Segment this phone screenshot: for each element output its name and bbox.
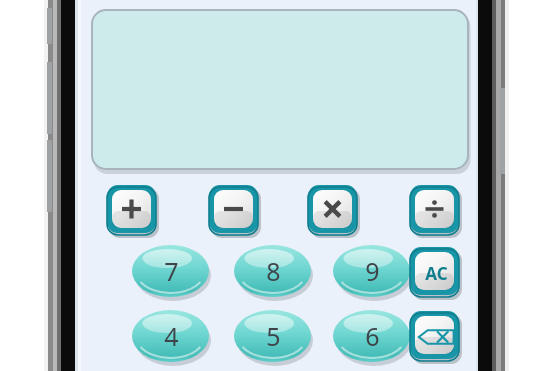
button[interactable]: Minus xyxy=(209,185,261,237)
staticText: AC xyxy=(425,262,448,285)
button[interactable]: Plus xyxy=(107,185,159,237)
staticText: 5 xyxy=(266,319,281,353)
staticText: 9 xyxy=(365,254,380,288)
button[interactable]: 5 xyxy=(234,310,314,366)
staticText: 6 xyxy=(365,319,380,353)
button[interactable]: AC xyxy=(410,247,462,299)
staticText: 4 xyxy=(164,319,179,353)
button[interactable]: 4 xyxy=(132,310,212,366)
button[interactable]: 6 xyxy=(333,310,413,366)
button[interactable]: 7 xyxy=(132,245,212,301)
button[interactable]: Multiply xyxy=(308,185,360,237)
staticText: 8 xyxy=(266,254,281,288)
staticText: 7 xyxy=(164,254,179,288)
button[interactable]: 9 xyxy=(333,245,413,301)
button[interactable]: Divide xyxy=(410,185,462,237)
button[interactable]: Backspace xyxy=(410,311,462,363)
button[interactable]: 8 xyxy=(234,245,314,301)
